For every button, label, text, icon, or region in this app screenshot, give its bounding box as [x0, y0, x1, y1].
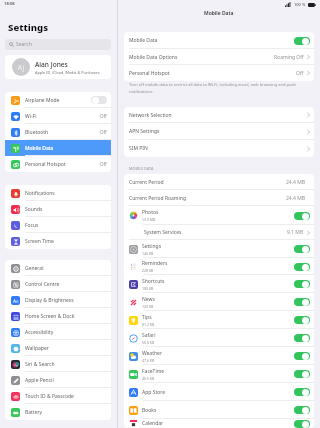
- button[interactable]: Toggle on: [294, 316, 310, 324]
- staticText: 228 KB: [142, 268, 154, 273]
- staticText: MOBILE DATA: [129, 166, 154, 171]
- staticText: SIM PIN: [129, 145, 148, 152]
- staticText: Bluetooth: [25, 129, 49, 136]
- staticText: 146 KB: [142, 251, 154, 256]
- button[interactable]: Toggle on: [294, 263, 310, 271]
- button[interactable]: General: [5, 260, 111, 276]
- button[interactable]: Settings: [124, 240, 314, 258]
- staticText: 120 KB: [142, 304, 154, 309]
- staticText: Weather: [142, 350, 162, 357]
- button[interactable]: News: [124, 293, 314, 311]
- button[interactable]: Toggle off: [91, 96, 107, 104]
- staticText: Settings: [142, 243, 162, 250]
- button[interactable]: Weather: [124, 347, 314, 365]
- button[interactable]: Siri & Search: [5, 356, 111, 372]
- button[interactable]: Sounds: [5, 201, 111, 217]
- button[interactable]: Airplane Mode: [5, 92, 111, 108]
- button[interactable]: Focus: [5, 217, 111, 233]
- button[interactable]: Display & Brightness: [5, 292, 111, 308]
- staticText: Off: [100, 113, 107, 119]
- staticText: Off: [100, 129, 107, 135]
- button[interactable]: APN Settings: [124, 123, 314, 140]
- staticText: Wallpaper: [25, 345, 49, 352]
- button[interactable]: Screen Time: [5, 233, 111, 249]
- staticText: Apple Pencil: [25, 377, 54, 384]
- staticText: Network Selection: [129, 112, 172, 119]
- staticText: Shortcuts: [142, 278, 165, 285]
- button[interactable]: Toggle on: [294, 370, 310, 378]
- button[interactable]: System Services: [124, 225, 314, 240]
- button[interactable]: Search: [5, 39, 111, 50]
- staticText: Current Period Roaming: [129, 195, 186, 202]
- button[interactable]: FaceTime: [124, 365, 314, 383]
- button[interactable]: Mobile Data: [5, 140, 111, 156]
- staticText: Apple ID, iCloud, Media & Purchases: [35, 70, 100, 75]
- button[interactable]: Books: [124, 401, 314, 419]
- staticText: 24.4 MB: [286, 195, 306, 202]
- staticText: 9.1 MB: [287, 229, 304, 236]
- staticText: Photos: [142, 209, 159, 216]
- staticText: Mobile Data Options: [129, 54, 178, 61]
- staticText: Off: [296, 70, 304, 77]
- button[interactable]: Calendar: [124, 419, 314, 428]
- button[interactable]: Home Screen & Dock: [5, 308, 111, 324]
- staticText: Home Screen & Dock: [25, 313, 75, 320]
- staticText: Sounds: [25, 206, 43, 213]
- staticText: Settings: [8, 21, 49, 34]
- button[interactable]: Mobile Data: [124, 32, 314, 49]
- button[interactable]: Toggle on: [294, 298, 310, 306]
- button[interactable]: SIM PIN: [124, 140, 314, 157]
- button[interactable]: Toggle on: [294, 212, 310, 220]
- button[interactable]: Photos: [124, 206, 314, 225]
- button[interactable]: Safari: [124, 329, 314, 347]
- staticText: App Store: [142, 389, 166, 396]
- button[interactable]: Current Period: [124, 174, 314, 190]
- staticText: Wi-Fi: [25, 113, 37, 120]
- button[interactable]: Network Selection: [124, 107, 314, 123]
- button[interactable]: AJ: [5, 55, 111, 79]
- staticText: Safari: [142, 332, 156, 339]
- button[interactable]: Personal Hotspot: [124, 65, 314, 81]
- staticText: Battery: [25, 409, 43, 416]
- button[interactable]: Battery: [5, 404, 111, 420]
- button[interactable]: Notifications: [5, 185, 111, 201]
- button[interactable]: Apple Pencil: [5, 372, 111, 388]
- button[interactable]: Mobile Data Options: [124, 49, 314, 65]
- staticText: Alan Jones: [35, 60, 68, 69]
- button[interactable]: Touch ID & Passcode: [5, 388, 111, 404]
- button[interactable]: Accessibility: [5, 324, 111, 340]
- button[interactable]: Control Centre: [5, 276, 111, 292]
- staticText: System Services: [144, 229, 182, 236]
- staticText: FaceTime: [142, 368, 165, 375]
- button[interactable]: Shortcuts: [124, 275, 314, 293]
- button[interactable]: Toggle on: [294, 352, 310, 360]
- button[interactable]: Current Period Roaming: [124, 190, 314, 206]
- staticText: Current Period: [129, 179, 164, 186]
- staticText: Screen Time: [25, 238, 54, 245]
- button[interactable]: Reminders: [124, 258, 314, 275]
- button[interactable]: Bluetooth: [5, 124, 111, 140]
- staticText: Calendar: [142, 420, 164, 427]
- button[interactable]: Toggle on: [294, 406, 310, 414]
- staticText: 50.6 KB: [142, 340, 155, 345]
- staticText: Search: [16, 41, 32, 48]
- button[interactable]: Personal Hotspot: [5, 156, 111, 172]
- staticText: 81.2 KB: [142, 322, 155, 327]
- staticText: Siri & Search: [25, 361, 55, 368]
- button[interactable]: App Store: [124, 383, 314, 401]
- button[interactable]: Toggle on: [294, 245, 310, 253]
- staticText: Focus: [25, 222, 39, 229]
- button[interactable]: Toggle on: [294, 420, 310, 428]
- staticText: APN Settings: [129, 128, 160, 135]
- button[interactable]: Tips: [124, 311, 314, 329]
- staticText: 46.5 KB: [142, 376, 155, 381]
- button[interactable]: Toggle on: [294, 280, 310, 288]
- staticText: AJ: [18, 63, 25, 72]
- button[interactable]: Toggle on: [294, 388, 310, 396]
- button[interactable]: Wi-Fi: [5, 108, 111, 124]
- button[interactable]: Wallpaper: [5, 340, 111, 356]
- button[interactable]: Toggle on: [294, 37, 310, 45]
- staticText: Control Centre: [25, 281, 60, 288]
- button[interactable]: Toggle on: [294, 334, 310, 342]
- staticText: Touch ID & Passcode: [25, 393, 74, 400]
